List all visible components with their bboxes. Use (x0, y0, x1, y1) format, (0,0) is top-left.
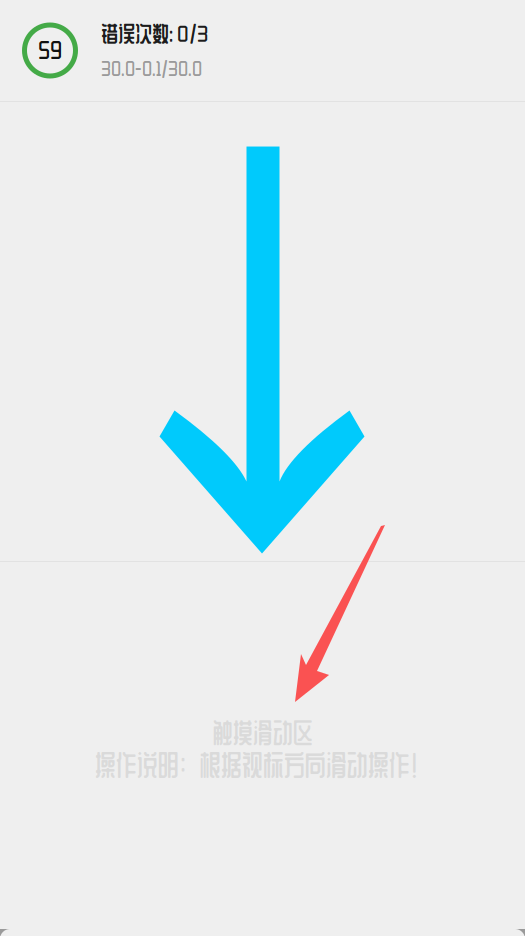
staticText: 30.0-0.1/30.0 (101, 57, 202, 81)
button[interactable]: 剩余时间 59 秒 (22, 22, 78, 78)
staticText: 触摸滑动区 (212, 717, 312, 748)
staticText: 操作说明：根据视标方向滑动操作！ (94, 748, 430, 781)
staticText: 错误次数: 0/3 (101, 20, 208, 47)
button[interactable]: 触摸滑动区，根据视标方向滑动操作 (0, 562, 525, 936)
staticText: 59 (38, 36, 62, 65)
